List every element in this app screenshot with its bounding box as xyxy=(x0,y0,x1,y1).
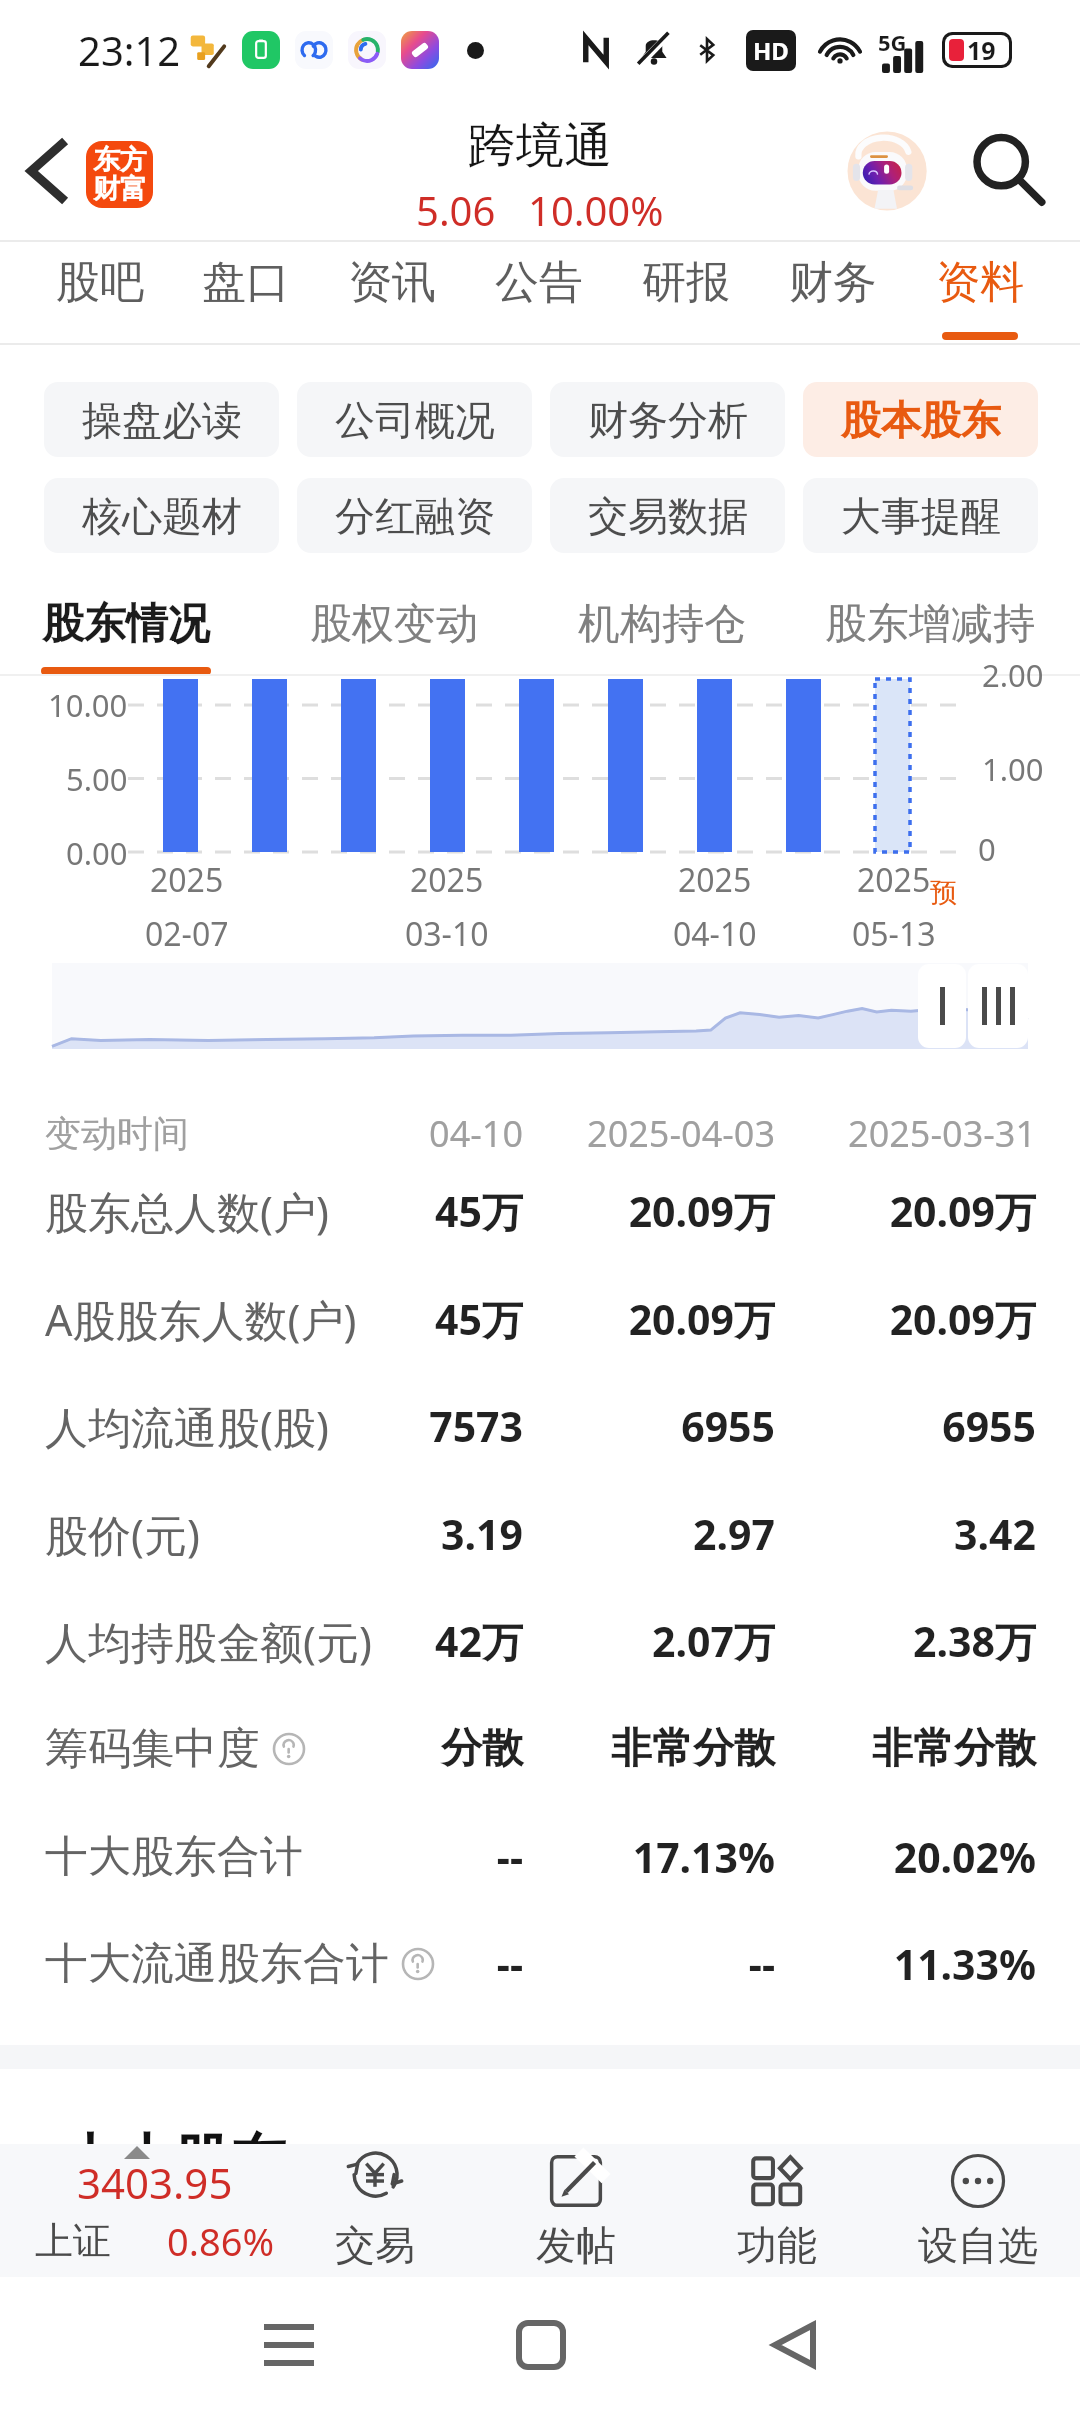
staticText: 0.00 xyxy=(66,832,128,874)
staticText: -- xyxy=(303,1936,523,1992)
staticText: 23:12 xyxy=(78,23,181,77)
staticText: 20.09万 xyxy=(796,1183,1036,1239)
staticText: 研报 xyxy=(642,255,730,310)
button[interactable]: Multi view xyxy=(968,964,1028,1048)
staticText: 十大流通股东合计 xyxy=(45,1937,389,1991)
staticText: 跨境通 xyxy=(468,116,612,176)
staticText: 股权变动 xyxy=(310,598,478,651)
button[interactable]: 股吧 xyxy=(27,241,173,343)
staticText: 公告 xyxy=(495,255,583,310)
staticText: 05-13 xyxy=(852,912,936,953)
button[interactable]: 发帖 xyxy=(475,2144,676,2277)
button[interactable]: 股东情况 xyxy=(0,586,260,676)
button[interactable]: 股本股东 xyxy=(803,382,1038,457)
staticText: 6955 xyxy=(796,1398,1036,1454)
staticText: 20.09万 xyxy=(535,1291,775,1347)
button[interactable]: Back xyxy=(746,2298,840,2392)
staticText: -- xyxy=(535,1936,775,1992)
button[interactable]: 股权变动 xyxy=(260,586,528,676)
staticText: 6955 xyxy=(535,1398,775,1454)
button[interactable]: 人均持股金额(元) xyxy=(0,1587,1080,1695)
button[interactable]: Search xyxy=(954,116,1064,226)
staticText: 交易 xyxy=(335,2220,415,2270)
staticText: 筹码集中度 xyxy=(45,1722,260,1776)
button[interactable]: 十大股东合计 xyxy=(0,1803,1080,1911)
staticText: 20.02% xyxy=(796,1829,1036,1885)
button[interactable]: 分红融资 xyxy=(297,478,532,553)
button[interactable]: Back xyxy=(0,100,96,241)
staticText: 盘口 xyxy=(202,255,290,310)
staticText: 10.00 xyxy=(48,684,128,726)
staticText: 2025-03-31 xyxy=(776,1109,1036,1158)
staticText: 非常分散 xyxy=(535,1723,775,1775)
staticText: 5.00 xyxy=(66,758,128,800)
staticText: 机构持仓 xyxy=(578,598,746,651)
staticText: 2025-04-03 xyxy=(515,1109,775,1158)
staticText: 股吧 xyxy=(56,255,144,310)
button[interactable]: 资讯 xyxy=(319,241,465,343)
button[interactable]: 盘口 xyxy=(173,241,319,343)
staticText: 公司概况 xyxy=(335,395,495,445)
staticText: 发帖 xyxy=(536,2220,616,2270)
staticText: 人均流通股(股) xyxy=(45,1397,329,1456)
button[interactable]: 功能 xyxy=(676,2144,877,2277)
staticText: 3.42 xyxy=(796,1506,1036,1562)
button[interactable]: 股价(元) xyxy=(0,1480,1080,1588)
button[interactable]: 筹码集中度 xyxy=(0,1695,1080,1803)
staticText: 分红融资 xyxy=(335,491,495,541)
staticText: 11.33% xyxy=(796,1936,1036,1992)
button[interactable]: A股股东人数(户) xyxy=(0,1265,1080,1373)
button[interactable]: 3403.95 xyxy=(0,2144,274,2277)
staticText: 03-10 xyxy=(405,912,489,953)
button[interactable]: 人均流通股(股) xyxy=(0,1372,1080,1480)
staticText: 股东情况 xyxy=(42,598,210,651)
button[interactable]: 交易 xyxy=(274,2144,475,2277)
staticText: 分散 xyxy=(303,1723,523,1775)
button[interactable]: 股东总人数(户) xyxy=(0,1157,1080,1265)
staticText: 交易数据 xyxy=(588,491,748,541)
button[interactable]: 财务分析 xyxy=(550,382,785,457)
button[interactable]: 核心题材 xyxy=(44,478,279,553)
staticText: 十大股东 xyxy=(62,2126,286,2197)
staticText: 5.06 xyxy=(416,183,496,237)
staticText: 资讯 xyxy=(348,255,436,310)
button[interactable]: Recents xyxy=(242,2298,336,2392)
button[interactable]: 操盘必读 xyxy=(44,382,279,457)
staticText: 04-10 xyxy=(673,912,757,953)
staticText: 45万 xyxy=(303,1183,523,1239)
button[interactable]: 机构持仓 xyxy=(528,586,796,676)
staticText: 2025 xyxy=(678,858,752,902)
button[interactable]: 股东增减持 xyxy=(796,586,1064,676)
staticText: 财务 xyxy=(789,255,877,310)
button[interactable]: AI assistant xyxy=(838,121,938,221)
button[interactable]: 公告 xyxy=(465,241,612,343)
staticText: 大事提醒 xyxy=(841,491,1001,541)
staticText: 45万 xyxy=(303,1291,523,1347)
staticText: 变动时间 xyxy=(45,1111,189,1156)
staticText: 设自选 xyxy=(918,2220,1038,2270)
staticText: 2.07万 xyxy=(535,1613,775,1669)
button[interactable]: 设自选 xyxy=(877,2144,1078,2277)
staticText: 东方 财富 xyxy=(93,143,147,206)
staticText: 0.86% xyxy=(167,2215,274,2267)
staticText: 股东总人数(户) xyxy=(45,1182,329,1241)
staticText: 42万 xyxy=(303,1613,523,1669)
staticText: 02-07 xyxy=(145,912,229,953)
staticText: 股东增减持 xyxy=(825,598,1035,651)
staticText: 2025 xyxy=(150,858,224,902)
staticText: 2025 xyxy=(857,858,931,902)
staticText: 17.13% xyxy=(535,1829,775,1885)
staticText: 10.00% xyxy=(528,183,664,237)
staticText: 2.38万 xyxy=(796,1613,1036,1669)
button[interactable]: Single view xyxy=(918,964,966,1048)
staticText: 十大股东合计 xyxy=(45,1830,303,1884)
button[interactable]: 公司概况 xyxy=(297,382,532,457)
button[interactable]: 资料 xyxy=(906,241,1053,343)
button[interactable]: 大事提醒 xyxy=(803,478,1038,553)
button[interactable]: 研报 xyxy=(612,241,759,343)
button[interactable]: 财务 xyxy=(759,241,906,343)
button[interactable]: Home xyxy=(494,2298,588,2392)
button[interactable]: 交易数据 xyxy=(550,478,785,553)
button[interactable]: East Money home xyxy=(86,141,153,208)
button[interactable]: 十大流通股东合计 xyxy=(0,1910,1080,2018)
